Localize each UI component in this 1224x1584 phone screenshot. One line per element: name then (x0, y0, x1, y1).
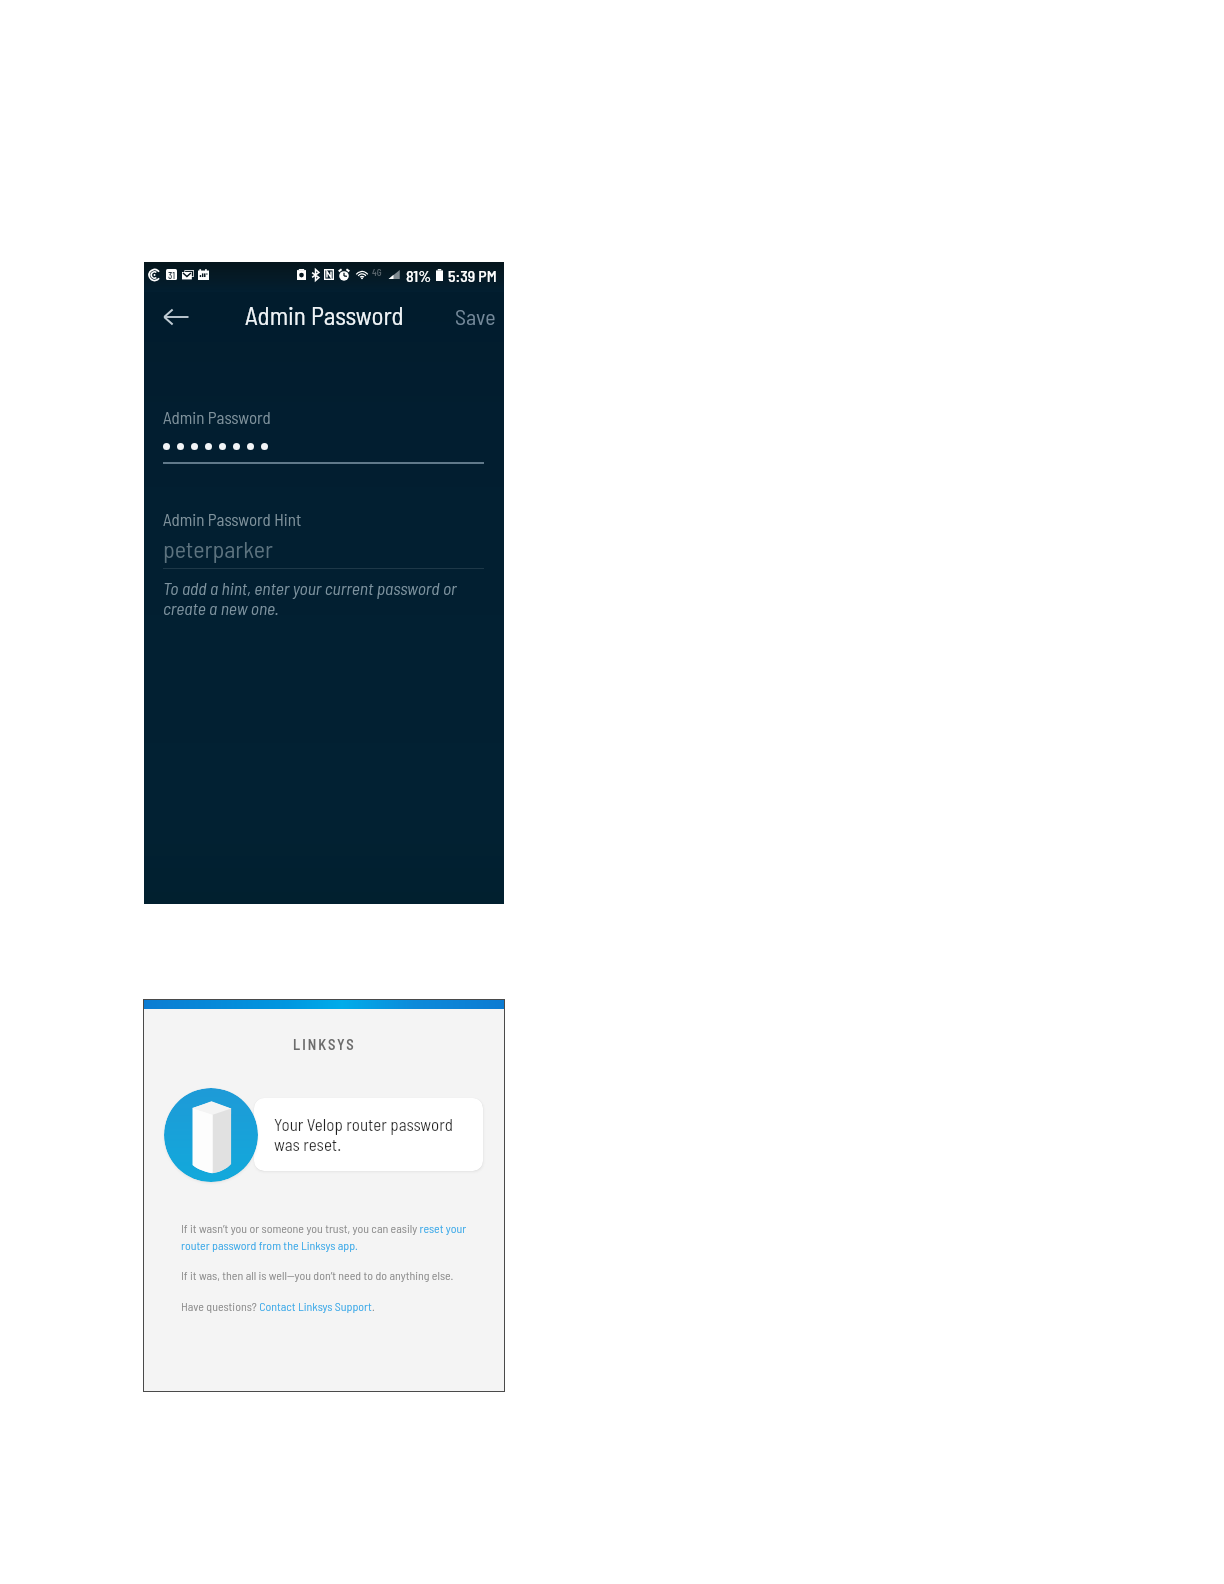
staticText: Admin Password (245, 300, 404, 330)
staticText: Save (455, 303, 496, 329)
staticText: 81% (406, 266, 432, 285)
staticText: Your Velop router password was reset. (274, 1114, 459, 1154)
button[interactable]: Back (152, 293, 200, 341)
button[interactable]: Your Velop router password was reset. (254, 1098, 483, 1171)
staticText: 5:39 PM (448, 266, 497, 285)
button[interactable]: Save (447, 294, 504, 340)
staticText: If it was, then all is well—you don’t ne… (181, 1268, 454, 1282)
button[interactable]: Have questions? Contact Linksys Support. (181, 1299, 501, 1313)
staticText: If it wasn’t you or someone you trust, y… (181, 1221, 471, 1252)
button[interactable]: Admin password field (163, 434, 484, 464)
staticText: Have questions? Contact Linksys Support. (181, 1299, 375, 1313)
staticText: 31 (168, 270, 175, 280)
staticText: 4GE (372, 267, 385, 278)
button[interactable]: peterparker (163, 532, 484, 570)
staticText: Admin Password (163, 407, 271, 427)
button[interactable]: If it wasn’t you or someone you trust, y… (181, 1221, 471, 1252)
staticText: Admin Password Hint (163, 509, 302, 529)
staticText: LINKSYS (293, 1035, 356, 1052)
staticText: peterparker (163, 534, 273, 563)
staticText: To add a hint, enter your current passwo… (163, 577, 483, 619)
